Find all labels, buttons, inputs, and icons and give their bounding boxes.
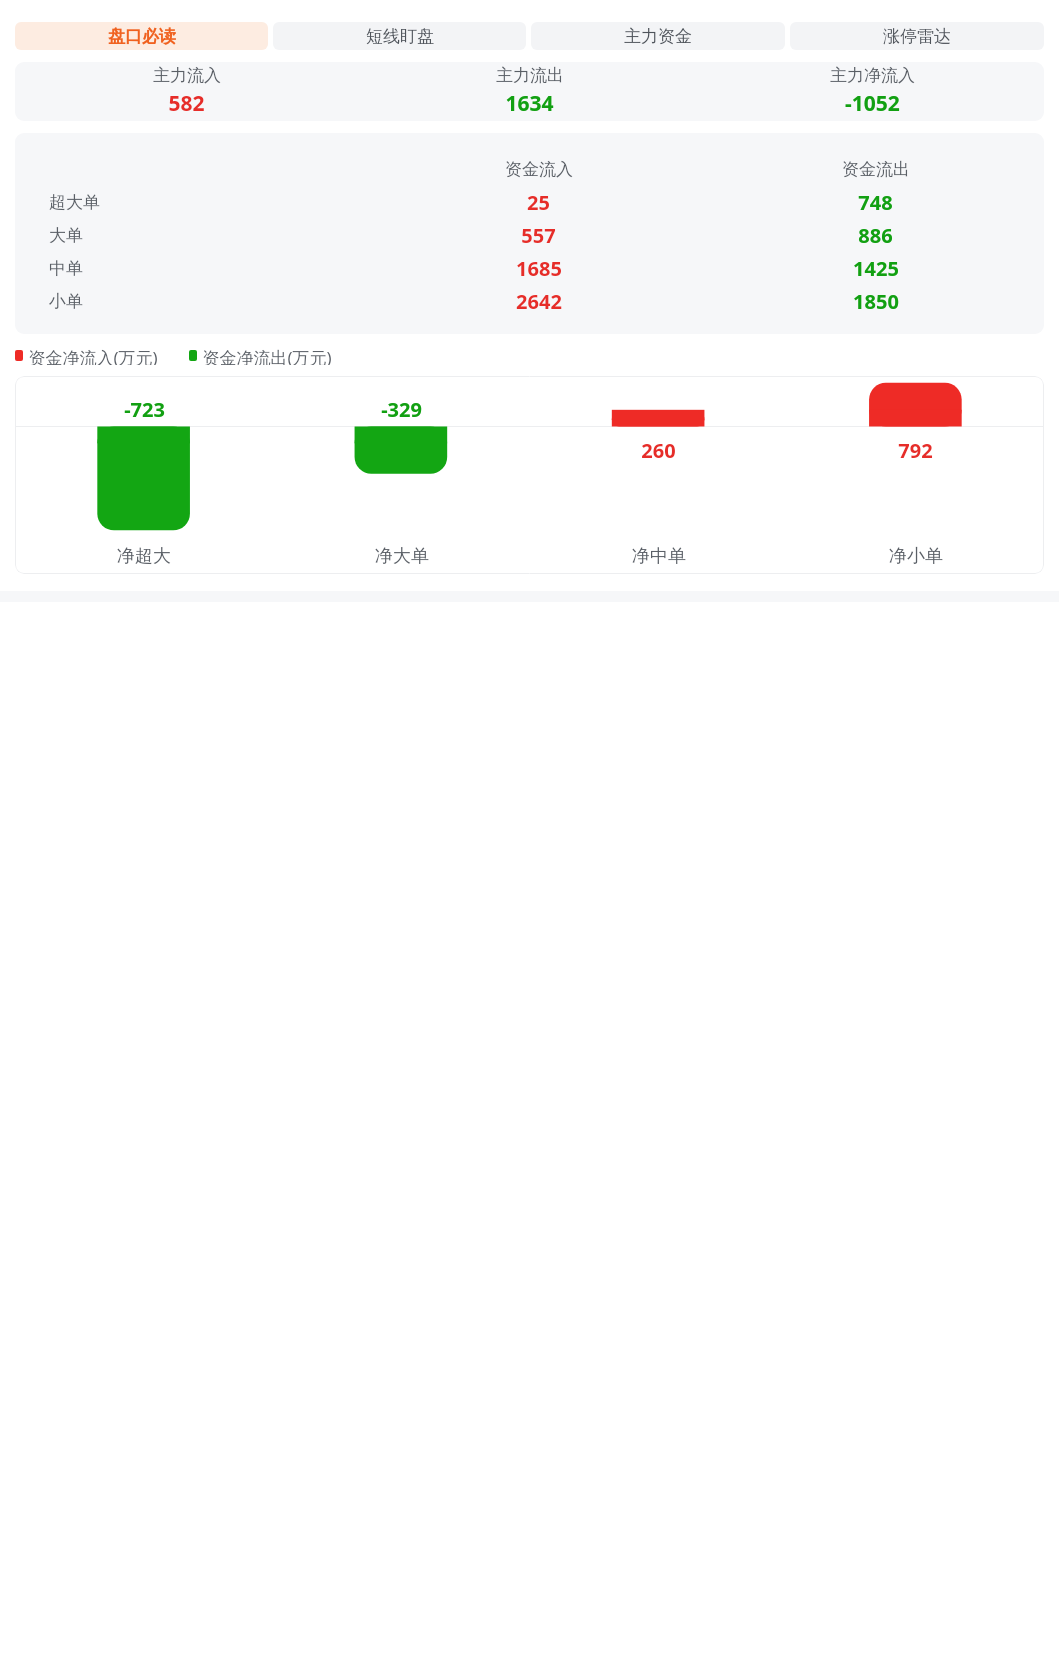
staticText: 资金净流出(万元) <box>202 346 332 365</box>
button[interactable]: 资金流入 <box>15 133 1044 334</box>
button[interactable]: 主力流出 <box>358 65 701 118</box>
staticText: 1425 <box>853 255 899 282</box>
staticText: 净中单 <box>632 545 686 568</box>
staticText: 1685 <box>516 255 562 282</box>
staticText: 582 <box>168 89 205 118</box>
staticText: 主力净流入 <box>830 65 915 86</box>
staticText: 大单 <box>49 225 83 246</box>
staticText: 涨停雷达 <box>883 26 951 47</box>
button[interactable]: 资金净流入(万元) <box>15 346 158 365</box>
staticText: 25 <box>527 189 550 216</box>
staticText: 主力资金 <box>624 26 692 47</box>
button[interactable]: 短线盯盘 <box>273 22 526 50</box>
staticText: 超大单 <box>49 192 100 213</box>
button[interactable]: 超大单 <box>15 186 1044 219</box>
button[interactable]: 资金净流出(万元) <box>189 346 332 365</box>
staticText: 净小单 <box>889 545 943 568</box>
staticText: 中单 <box>49 258 83 279</box>
staticText: 资金净流入(万元) <box>28 346 158 365</box>
staticText: 1634 <box>505 89 554 118</box>
staticText: -1052 <box>845 89 900 118</box>
button[interactable]: 主力流入 <box>15 62 1044 121</box>
staticText: 主力流出 <box>496 65 564 86</box>
button[interactable]: 盘口必读 <box>15 22 268 50</box>
staticText: 2642 <box>516 288 562 315</box>
staticText: 1850 <box>853 288 899 315</box>
staticText: 小单 <box>49 291 83 312</box>
staticText: 792 <box>898 437 933 464</box>
staticText: 资金流入 <box>505 159 573 180</box>
button[interactable]: 主力资金 <box>531 22 785 50</box>
staticText: 748 <box>858 189 893 216</box>
button[interactable]: 小单 <box>15 285 1044 318</box>
staticText: 主力流入 <box>153 65 221 86</box>
staticText: 短线盯盘 <box>366 26 434 47</box>
staticText: -723 <box>124 396 165 423</box>
button[interactable]: 中单 <box>15 252 1044 285</box>
staticText: 260 <box>641 437 676 464</box>
button[interactable]: 主力流入 <box>15 65 358 118</box>
staticText: 资金流出 <box>842 159 910 180</box>
button[interactable]: 大单 <box>15 219 1044 252</box>
staticText: 净超大 <box>117 545 171 568</box>
staticText: 盘口必读 <box>108 26 176 47</box>
staticText: -329 <box>381 396 422 423</box>
button[interactable]: -723 <box>15 376 1044 574</box>
button[interactable]: 主力净流入 <box>701 65 1044 118</box>
staticText: 净大单 <box>375 545 429 568</box>
button[interactable]: 涨停雷达 <box>790 22 1044 50</box>
staticText: 557 <box>521 222 556 249</box>
staticText: 886 <box>858 222 893 249</box>
